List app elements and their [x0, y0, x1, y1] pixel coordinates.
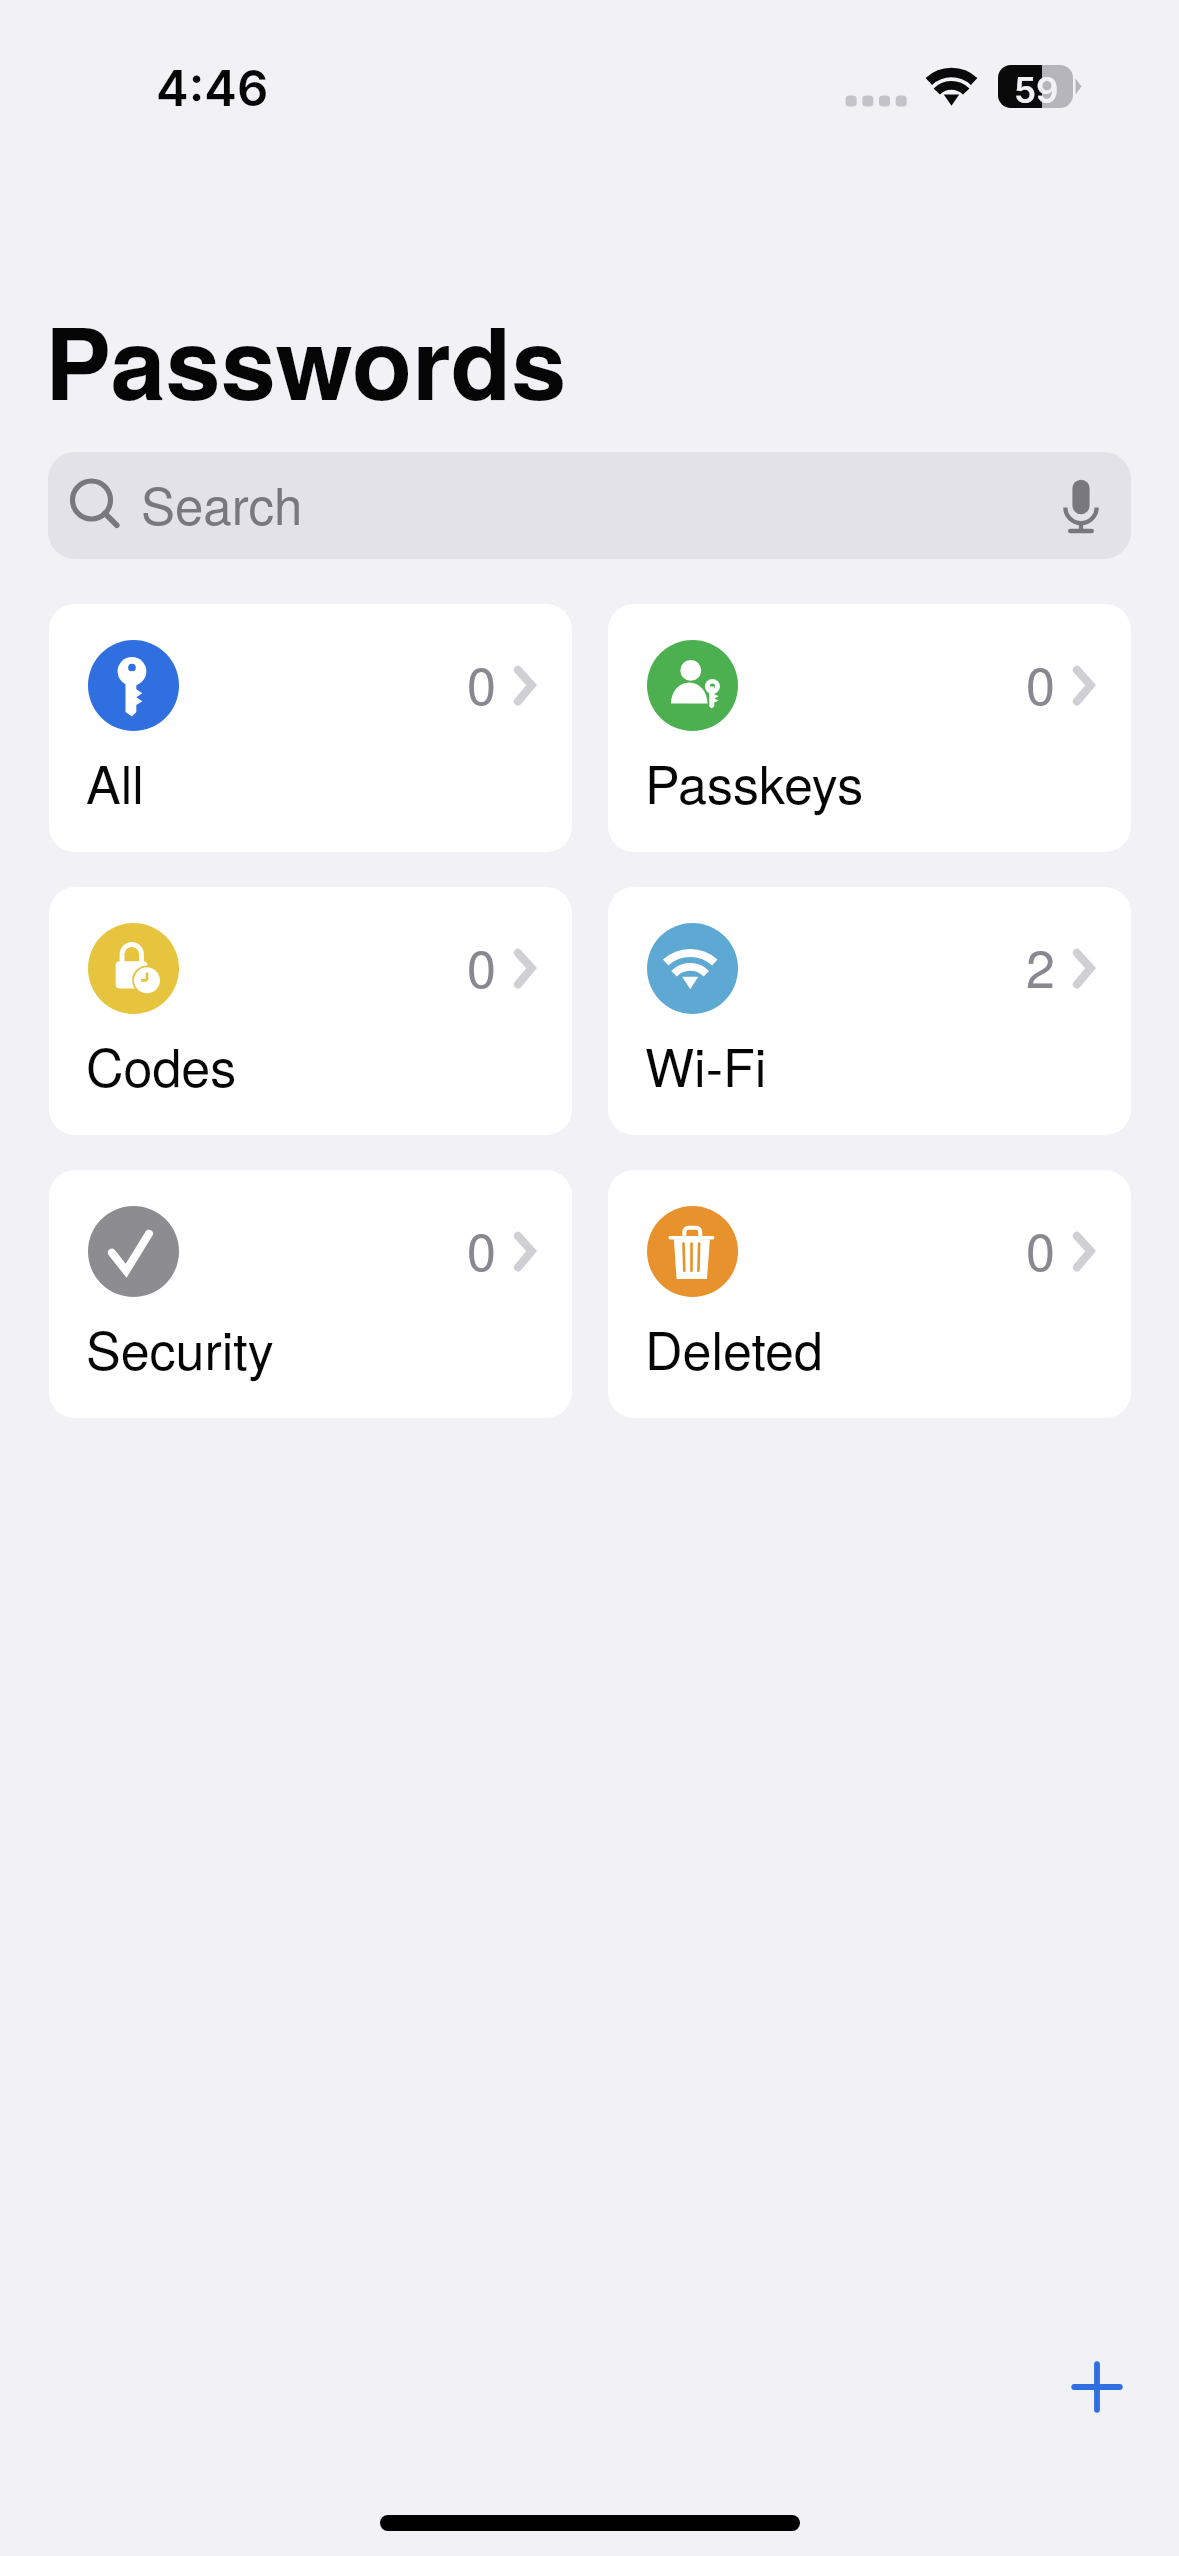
staticText: Passkeys — [645, 744, 864, 818]
button[interactable]: 2 — [608, 887, 1131, 1135]
staticText: Security — [86, 1310, 274, 1384]
button[interactable]: Add password — [1047, 2337, 1147, 2437]
button[interactable]: Search — [48, 452, 1131, 559]
button[interactable]: 0 — [49, 1170, 572, 1418]
staticText: 0 — [467, 928, 496, 1002]
staticText: 2 — [1026, 928, 1055, 1002]
staticText: All — [86, 744, 144, 818]
staticText: Deleted — [645, 1310, 823, 1384]
button[interactable]: 0 — [608, 1170, 1131, 1418]
staticText: Passwords — [45, 289, 567, 431]
button[interactable]: Voice search — [1048, 466, 1130, 548]
button[interactable]: 0 — [49, 887, 572, 1135]
button[interactable]: 0 — [49, 604, 572, 852]
staticText: Codes — [86, 1027, 237, 1101]
button[interactable]: 0 — [608, 604, 1131, 852]
staticText: 0 — [1026, 1211, 1055, 1285]
staticText: 4:46 — [156, 59, 269, 118]
staticText: Search — [141, 466, 303, 539]
staticText: Wi-Fi — [645, 1027, 767, 1101]
staticText: 59 — [1014, 69, 1059, 111]
staticText: 0 — [467, 645, 496, 719]
staticText: 0 — [1026, 645, 1055, 719]
staticText: 0 — [467, 1211, 496, 1285]
